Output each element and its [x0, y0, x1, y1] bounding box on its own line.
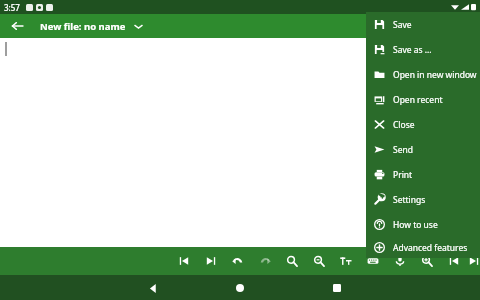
staticText: 3:57 — [4, 2, 20, 13]
button[interactable]: Go to end — [197, 247, 224, 275]
button[interactable]: Go to start — [170, 247, 197, 275]
button[interactable]: Search and replace — [305, 247, 332, 275]
button[interactable]: Search — [278, 247, 305, 275]
button[interactable]: New file: no name — [40, 20, 143, 33]
button[interactable]: Settings — [366, 187, 480, 212]
button[interactable]: Recents — [326, 277, 348, 299]
button[interactable]: Previous — [440, 247, 467, 275]
button[interactable]: Home — [229, 277, 251, 299]
button[interactable]: Keyboard — [359, 247, 386, 275]
button[interactable]: Next — [467, 247, 480, 275]
button[interactable]: Open in new window — [366, 62, 480, 87]
staticText: Advanced features — [393, 242, 468, 254]
staticText: Print — [393, 169, 413, 181]
staticText: New file: no name — [40, 20, 126, 33]
button[interactable]: Undo — [224, 247, 251, 275]
button[interactable]: Print — [366, 162, 480, 187]
button[interactable]: Save as ... — [366, 37, 480, 62]
staticText: Send — [393, 144, 413, 156]
button[interactable]: Redo — [251, 247, 278, 275]
button[interactable]: Open recent — [366, 87, 480, 112]
button[interactable]: Back — [8, 17, 26, 35]
button[interactable]: Advanced features — [366, 237, 480, 258]
button[interactable]: Zoom — [413, 247, 440, 275]
button[interactable]: Close — [366, 112, 480, 137]
staticText: Open in new window — [393, 69, 477, 81]
staticText: Save — [393, 19, 412, 31]
button[interactable]: Voice input — [386, 247, 413, 275]
button[interactable]: How to use — [366, 212, 480, 237]
staticText: Close — [393, 119, 415, 131]
button[interactable]: Send — [366, 137, 480, 162]
button[interactable]: Save — [366, 12, 480, 37]
staticText: Settings — [393, 194, 426, 206]
button[interactable]: Back — [142, 277, 164, 299]
staticText: Open recent — [393, 94, 443, 106]
staticText: Save as ... — [393, 44, 432, 56]
button[interactable]: Text format — [332, 247, 359, 275]
staticText: How to use — [393, 219, 438, 231]
